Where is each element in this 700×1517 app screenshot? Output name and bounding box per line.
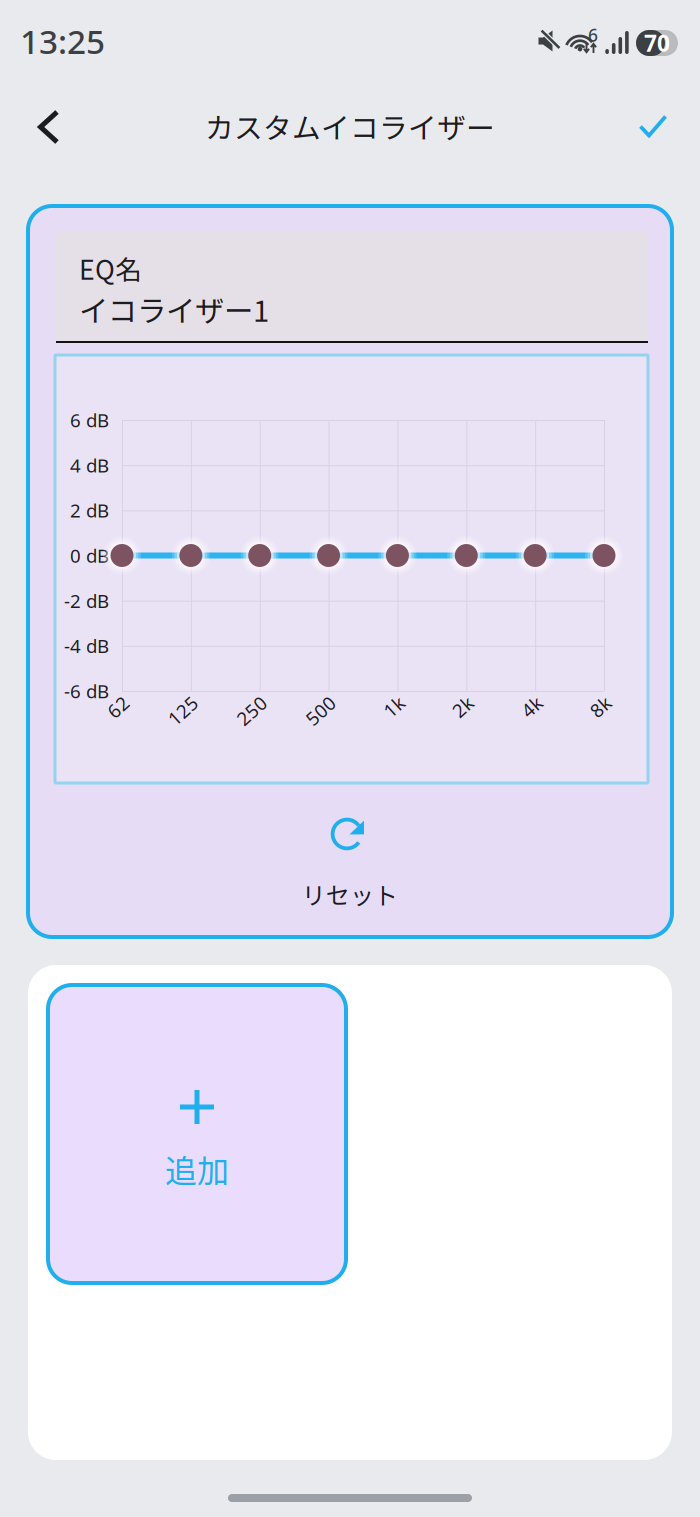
button[interactable]: 追加 — [48, 985, 346, 1283]
staticText: 6 — [588, 23, 598, 46]
staticText: イコライザー1 — [79, 288, 269, 330]
staticText: 250 — [238, 705, 271, 729]
staticText: -6 dB — [64, 679, 109, 703]
staticText: -4 dB — [64, 633, 109, 658]
staticText: 4k — [525, 705, 546, 729]
staticText: 8k — [594, 705, 615, 729]
staticText: 70 — [644, 28, 670, 58]
staticText: 0 dB — [70, 543, 109, 568]
staticText: 6 dB — [70, 408, 109, 432]
staticText: 125 — [169, 705, 202, 729]
button[interactable]: Save — [620, 93, 686, 159]
staticText: 2 dB — [70, 498, 109, 523]
button[interactable]: Back — [16, 94, 82, 160]
staticText: 追加 — [165, 1146, 229, 1192]
staticText: 4 dB — [70, 453, 109, 478]
staticText: 62 — [111, 705, 133, 729]
staticText: リセット — [302, 877, 398, 911]
button[interactable]: リセット — [28, 814, 672, 935]
staticText: カスタムイコライザー — [205, 105, 495, 147]
staticText: 2k — [456, 705, 477, 729]
staticText: 1k — [387, 705, 408, 729]
staticText: EQ名 — [79, 249, 142, 287]
staticText: 13:25 — [20, 19, 105, 63]
staticText: -2 dB — [64, 588, 109, 613]
staticText: 500 — [307, 705, 340, 729]
